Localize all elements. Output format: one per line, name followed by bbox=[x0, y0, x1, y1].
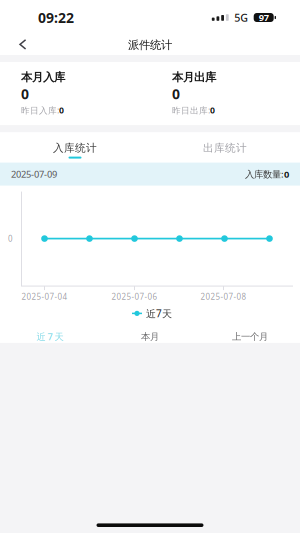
staticText: 97 bbox=[259, 11, 269, 24]
staticText: 入库统计 bbox=[53, 141, 97, 154]
staticText: 出库统计 bbox=[203, 141, 247, 154]
button[interactable]: 出库统计 bbox=[150, 132, 300, 162]
staticText: 昨日入库: bbox=[21, 104, 59, 116]
staticText: 0 bbox=[8, 233, 13, 244]
staticText: 近7天 bbox=[146, 307, 172, 320]
button[interactable]: 本月 bbox=[100, 331, 200, 342]
staticText: 本月入库 bbox=[21, 70, 65, 84]
staticText: 09:22 bbox=[38, 8, 74, 27]
staticText: 0 bbox=[284, 168, 289, 180]
staticText: 2025-07-09 bbox=[11, 168, 57, 180]
button[interactable]: Back bbox=[0, 31, 46, 56]
staticText: 0 bbox=[210, 104, 215, 116]
staticText: 近 7 天 bbox=[36, 330, 63, 343]
staticText: 本月 bbox=[141, 331, 159, 342]
button[interactable]: 入库统计 bbox=[0, 132, 150, 162]
button[interactable]: 近 7 天 bbox=[0, 330, 100, 343]
staticText: 入库数量: bbox=[245, 168, 284, 180]
staticText: 上一个月 bbox=[232, 331, 268, 342]
staticText: 本月出库 bbox=[172, 70, 216, 84]
staticText: 2025-07-04 bbox=[21, 291, 67, 302]
staticText: 2025-07-08 bbox=[200, 291, 246, 302]
button[interactable]: 上一个月 bbox=[200, 331, 300, 342]
staticText: 0 bbox=[59, 104, 64, 116]
staticText: 5G bbox=[234, 10, 248, 25]
staticText: 昨日出库: bbox=[172, 104, 210, 116]
staticText: 2025-07-06 bbox=[111, 291, 157, 302]
staticText: 派件统计 bbox=[128, 38, 172, 52]
staticText: 0 bbox=[172, 84, 180, 103]
staticText: 0 bbox=[21, 84, 29, 103]
